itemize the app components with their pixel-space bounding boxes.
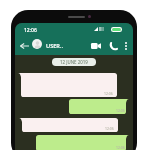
staticText: 12:06 [104,91,113,96]
staticText: USER.. [46,42,63,50]
button[interactable]: 12:06 [18,73,117,97]
button[interactable]: Video call [89,39,103,52]
staticText: 12:06 [116,145,125,150]
button[interactable]: More options [121,39,131,52]
button[interactable]: 12:06 [19,118,118,132]
button[interactable]: Voice call [107,39,120,52]
button[interactable]: 12:06 [69,99,129,114]
button[interactable]: Back [19,39,30,52]
staticText: 12:06 [116,108,125,113]
staticText: 12 JUNE 2019 [60,59,88,65]
staticText: 12:06 [105,126,114,131]
staticText: 12:06 [24,27,37,34]
button[interactable]: Contact avatar [32,39,42,49]
button[interactable]: 12:06 [36,135,129,150]
